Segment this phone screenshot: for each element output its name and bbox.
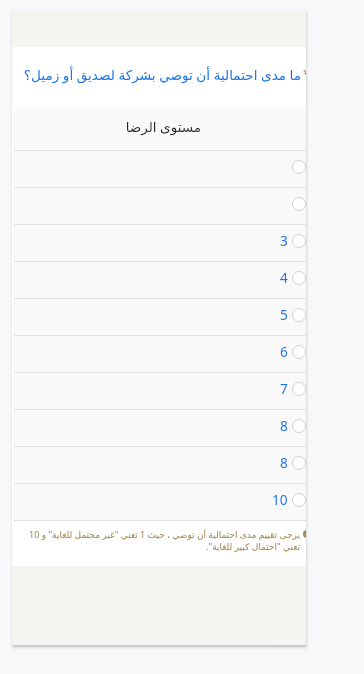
button[interactable]: 6 — [14, 336, 306, 372]
button[interactable]: 7 — [14, 373, 306, 409]
button[interactable]: 8 — [14, 410, 306, 446]
staticText: 5 — [280, 305, 288, 324]
other: option — [292, 456, 306, 470]
staticText: 8 — [280, 416, 288, 435]
other: option — [292, 197, 306, 211]
staticText: 10 — [272, 490, 288, 509]
other: option — [292, 419, 306, 433]
other: Info — [303, 530, 306, 538]
button[interactable]: 3 — [14, 225, 306, 261]
button[interactable]: 5 — [14, 299, 306, 335]
button[interactable]: 4 — [14, 262, 306, 298]
other: option — [292, 160, 306, 174]
other: option — [292, 308, 306, 322]
staticText: 7 — [280, 379, 288, 398]
other: option — [292, 382, 306, 396]
staticText: 4 — [280, 268, 288, 287]
staticText: يرجى تقييم مدى احتمالية أن توصي ، حيث 1 … — [22, 528, 300, 552]
other: option — [292, 271, 306, 285]
staticText: * — [303, 64, 306, 83]
other: option — [292, 234, 306, 248]
other: option — [292, 493, 306, 507]
other: option — [292, 345, 306, 359]
staticText: 6 — [280, 342, 288, 361]
staticText: 8 — [280, 453, 288, 472]
staticText: 3 — [280, 231, 288, 250]
staticText: ما مدى احتمالية أن توصي بشركة لصديق أو ز… — [12, 65, 301, 84]
button[interactable]: 10 — [14, 484, 306, 520]
staticText: مستوى الرضا — [125, 118, 201, 136]
button[interactable]: 8 — [14, 447, 306, 483]
